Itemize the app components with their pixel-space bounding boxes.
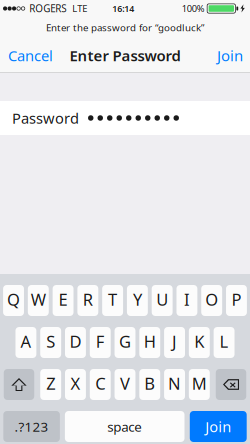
staticText: P [231, 288, 241, 310]
button[interactable]: S [40, 327, 61, 358]
button[interactable]: D [65, 327, 86, 358]
button[interactable]: F [90, 327, 111, 358]
staticText: A [20, 330, 31, 352]
button[interactable]: Z [40, 369, 61, 400]
button[interactable]: I [176, 285, 197, 316]
button[interactable]: A [15, 327, 36, 358]
staticText: R [83, 288, 93, 310]
button[interactable]: W [28, 285, 49, 316]
button[interactable]: R [77, 285, 98, 316]
button[interactable]: Q [3, 285, 24, 316]
button[interactable]: C [90, 369, 111, 400]
staticText: H [144, 330, 156, 352]
button[interactable]: Y [127, 285, 148, 316]
staticText: 16:14 [112, 2, 134, 14]
button[interactable]: G [114, 327, 135, 358]
staticText: Password [12, 108, 79, 128]
staticText: K [194, 330, 204, 352]
staticText: C [95, 372, 105, 394]
staticText: Join [205, 416, 231, 436]
staticText: L [220, 330, 229, 352]
button[interactable]: X [65, 369, 86, 400]
staticText: N [168, 372, 181, 394]
staticText: V [120, 372, 130, 394]
staticText: Q [7, 288, 20, 310]
button[interactable]: .?123 [3, 411, 60, 442]
button[interactable]: U [152, 285, 173, 316]
button[interactable]: Join [190, 411, 247, 442]
button[interactable]: K [189, 327, 210, 358]
button[interactable]: V [114, 369, 135, 400]
staticText: J [172, 330, 177, 352]
staticText: space [107, 417, 142, 436]
button[interactable]: L [214, 327, 234, 358]
button[interactable]: Cancel [0, 39, 60, 72]
button[interactable]: Delete [216, 369, 246, 400]
button[interactable]: M [189, 369, 210, 400]
staticText: O [205, 288, 218, 310]
button[interactable]: H [139, 327, 160, 358]
staticText: U [156, 288, 168, 310]
staticText: Y [133, 288, 142, 310]
staticText: Join [217, 45, 243, 66]
staticText: X [70, 372, 80, 394]
staticText: .?123 [15, 417, 49, 436]
staticText: Cancel [8, 45, 53, 65]
staticText: S [46, 330, 55, 352]
staticText: B [144, 372, 155, 394]
staticText: G [119, 330, 131, 352]
button[interactable]: T [102, 285, 123, 316]
button[interactable]: space [65, 411, 184, 442]
staticText: T [108, 288, 117, 310]
staticText: F [96, 330, 105, 352]
staticText: LTE [72, 2, 87, 15]
staticText: W [31, 288, 46, 310]
button[interactable]: Join [210, 39, 250, 72]
staticText: Enter Password [69, 45, 180, 66]
button[interactable]: Shift [4, 369, 34, 400]
staticText: Z [46, 372, 55, 394]
staticText: ROGERS [29, 2, 66, 15]
button[interactable]: O [201, 285, 222, 316]
button[interactable]: P [226, 285, 247, 316]
staticText: M [192, 372, 207, 394]
button[interactable]: J [164, 327, 185, 358]
staticText: D [69, 330, 81, 352]
button[interactable]: B [139, 369, 160, 400]
button[interactable]: E [53, 285, 73, 316]
staticText: Enter the password for “goodluck” [46, 21, 204, 34]
staticText: E [59, 288, 68, 310]
staticText: I [184, 288, 190, 310]
button[interactable]: N [164, 369, 185, 400]
staticText: 100% [182, 2, 205, 15]
